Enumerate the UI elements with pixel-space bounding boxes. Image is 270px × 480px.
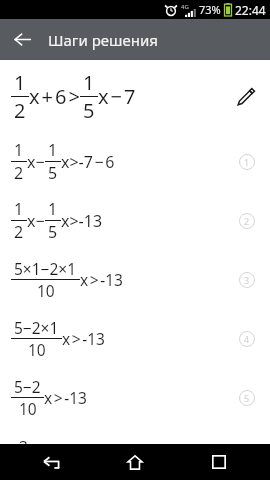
staticText: 3	[244, 274, 250, 286]
staticText: x > -13	[80, 269, 123, 290]
staticText: 1	[14, 69, 26, 96]
staticText: x − 7	[98, 83, 136, 110]
staticText: 3	[19, 436, 28, 444]
staticText: x−	[27, 210, 45, 232]
button[interactable]: Edit	[224, 74, 268, 118]
button[interactable]: 5−2×1	[0, 309, 270, 368]
staticText: x>-13	[61, 210, 103, 232]
button[interactable]: 1	[0, 191, 270, 250]
staticText: 73%	[199, 2, 221, 17]
staticText: x−	[27, 151, 45, 173]
staticText: 5	[83, 97, 95, 124]
staticText: 1	[48, 198, 58, 220]
staticText: 1	[14, 139, 24, 161]
staticText: 10	[28, 339, 46, 360]
staticText: 5−2	[14, 376, 41, 397]
staticText: 2	[244, 215, 250, 227]
button[interactable]: Back	[0, 19, 44, 60]
staticText: 22:44	[235, 2, 266, 18]
button[interactable]: 1	[0, 60, 270, 132]
staticText: 5	[244, 392, 250, 404]
staticText: 1	[244, 156, 250, 168]
button[interactable]: 5×1−2×1	[0, 250, 270, 309]
staticText: 4G	[181, 3, 189, 11]
staticText: x>-7 − 6	[61, 151, 115, 173]
staticText: 2	[14, 221, 24, 243]
staticText: x > -13	[62, 328, 105, 349]
staticText: 2	[14, 162, 24, 184]
button[interactable]: 5−2	[0, 368, 270, 427]
staticText: 1	[14, 198, 24, 220]
staticText: 1	[83, 69, 95, 96]
button[interactable]: Home	[103, 444, 167, 480]
staticText: 1	[48, 139, 58, 161]
button[interactable]: 3	[0, 427, 270, 444]
button[interactable]: Back	[20, 444, 84, 480]
staticText: 10	[19, 398, 37, 419]
staticText: 4	[244, 333, 250, 345]
staticText: 5	[48, 221, 58, 243]
button[interactable]: Recents	[187, 444, 251, 480]
staticText: 10	[37, 280, 55, 301]
staticText: 5×1−2×1	[14, 258, 77, 279]
staticText: 2	[14, 97, 26, 124]
staticText: x > -13	[44, 387, 87, 408]
staticText: x + 6 >	[29, 83, 80, 110]
staticText: 5−2×1	[14, 317, 59, 338]
staticText: 5	[48, 162, 58, 184]
button[interactable]: 1	[0, 132, 270, 191]
staticText: Шаги решения	[48, 30, 158, 50]
